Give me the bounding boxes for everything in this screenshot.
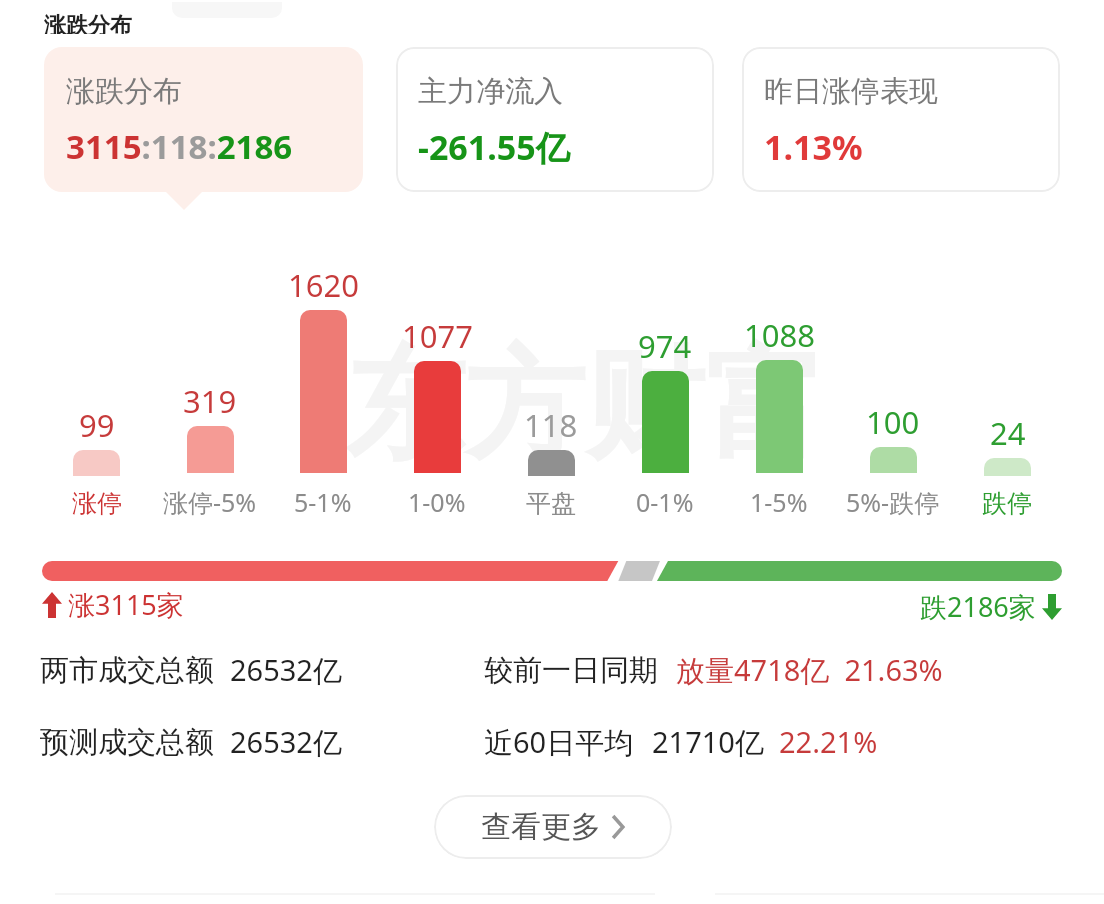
staticText: 涨跌分布 [66,73,182,110]
staticText: 跌停 [982,488,1032,519]
button[interactable]: 昨日涨停表现 [742,47,1060,192]
staticText: 放量4718亿 21.63% [676,650,943,690]
staticText: 5%-跌停 [846,485,940,519]
button[interactable]: 查看更多 [434,795,672,859]
staticText: 1620 [288,264,359,306]
staticText: 查看更多 [481,808,601,846]
button[interactable]: 主力净流入 [396,47,714,192]
staticText: 1088 [744,314,815,356]
staticText: 预测成交总额 [40,724,214,761]
staticText: 100 [866,401,920,443]
staticText: 平盘 [526,488,576,519]
staticText: 0-1% [636,485,694,519]
button[interactable]: 涨跌分布 [0,0,1104,22]
staticText: 主力净流入 [418,73,563,110]
staticText: 近60日平均 [484,722,634,762]
staticText: -261.55亿 [418,124,570,170]
staticText: 昨日涨停表现 [764,73,938,110]
staticText: 跌2186家 [920,588,1036,625]
staticText: 3115:118:2186 [66,124,293,169]
button[interactable]: 预测成交总额 [0,720,1104,764]
button[interactable]: 两市成交总额 [0,648,1104,692]
staticText: 1.13% [764,124,863,170]
staticText: 5-1% [294,485,352,519]
staticText: 24 [990,412,1026,454]
staticText: 较前一日同期 [484,652,658,689]
staticText: 319 [183,380,237,422]
staticText: 东方财富 [345,330,825,481]
staticText: 1-0% [408,485,466,519]
staticText: 974 [638,325,692,367]
staticText: 21710亿 22.21% [652,722,878,762]
button[interactable]: 涨跌分布 [44,47,363,192]
staticText: 涨停-5% [163,485,257,519]
staticText: 涨停 [72,488,122,519]
staticText: 涨3115家 [68,586,184,623]
staticText: 两市成交总额 [40,652,214,689]
staticText: 118 [524,404,578,446]
staticText: 26532亿 [230,722,342,762]
staticText: 1-5% [750,485,808,519]
staticText: 99 [79,404,115,446]
staticText: 1077 [402,315,473,357]
staticText: 26532亿 [230,650,342,690]
staticText: 涨跌分布 [44,12,132,34]
